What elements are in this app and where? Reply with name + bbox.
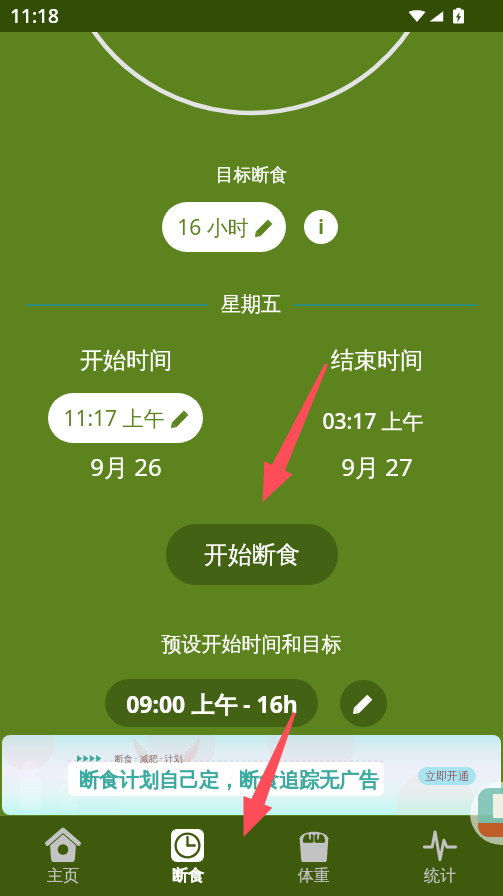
staticText: 体重 — [298, 866, 330, 886]
staticText: i — [318, 214, 324, 240]
staticText: 9月 27 — [341, 450, 413, 483]
staticText: 断食计划自己定，断食追踪无广告 — [79, 768, 379, 793]
button[interactable]: 开始断食 — [166, 524, 338, 585]
staticText: 断食 — [172, 866, 204, 886]
staticText: 9月 26 — [90, 450, 162, 483]
staticText: 03:17 上午 — [322, 407, 424, 436]
staticText: 统计 — [424, 866, 456, 886]
staticText: 开始断食 — [204, 540, 300, 570]
button[interactable]: 断食 — [125, 816, 251, 896]
staticText: 预设开始时间和目标 — [0, 632, 503, 657]
button[interactable]: 统计 — [377, 816, 503, 896]
staticText: 立即开通 — [425, 769, 469, 783]
button[interactable]: 11:17 上午 — [48, 393, 203, 443]
button[interactable]: 主页 — [0, 816, 125, 896]
staticText: 09:00 上午 - 16h — [126, 688, 298, 719]
staticText: 主页 — [47, 866, 79, 886]
staticText: 开始时间 — [80, 346, 172, 375]
button[interactable]: 体重 — [251, 816, 377, 896]
button[interactable]: Promo — [470, 782, 503, 845]
button[interactable]: 断食 · 减肥 · 计划 — [2, 735, 501, 815]
staticText: 结束时间 — [331, 346, 423, 375]
staticText: 11:18 — [10, 3, 59, 29]
staticText: 16 小时 — [177, 213, 249, 242]
button[interactable]: 09:00 上午 - 16h — [105, 679, 318, 727]
button[interactable]: 立即开通 — [418, 767, 476, 785]
staticText: 星期五 — [221, 292, 281, 317]
button[interactable]: Edit preset — [340, 680, 387, 727]
staticText: 11:17 上午 — [63, 404, 165, 433]
button[interactable]: Info — [304, 210, 338, 244]
staticText: 断食 · 减肥 · 计划 — [114, 752, 183, 764]
staticText: 目标断食 — [0, 164, 503, 187]
button[interactable]: 16 小时 — [162, 202, 286, 252]
